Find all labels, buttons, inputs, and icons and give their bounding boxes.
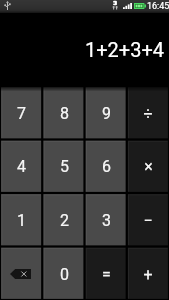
button[interactable]: 3: [85, 192, 127, 246]
button[interactable]: −: [127, 192, 169, 246]
button[interactable]: Delete: [0, 246, 43, 300]
staticText: 1: [17, 211, 26, 230]
button[interactable]: 7: [0, 86, 43, 139]
staticText: ×: [144, 157, 153, 176]
staticText: 8: [60, 104, 69, 123]
button[interactable]: =: [85, 246, 127, 300]
button[interactable]: 5: [43, 139, 85, 192]
staticText: 7: [17, 104, 26, 123]
button[interactable]: ×: [127, 139, 169, 192]
button[interactable]: 1: [0, 192, 43, 246]
staticText: 3: [102, 211, 111, 230]
button[interactable]: 6: [85, 139, 127, 192]
button[interactable]: 4: [0, 139, 43, 192]
button[interactable]: 9: [85, 86, 127, 139]
staticText: +: [143, 265, 153, 284]
button[interactable]: ÷: [127, 86, 169, 139]
button[interactable]: 8: [43, 86, 85, 139]
staticText: 9: [102, 104, 111, 123]
staticText: 4: [17, 157, 26, 176]
button[interactable]: 0: [43, 246, 85, 300]
staticText: 16:45: [147, 1, 169, 12]
staticText: 2: [60, 211, 69, 230]
staticText: −: [143, 211, 153, 230]
staticText: 0: [60, 265, 69, 284]
staticText: ÷: [143, 104, 153, 123]
staticText: 1+2+3+4: [85, 38, 165, 61]
button[interactable]: +: [127, 246, 169, 300]
staticText: =: [102, 265, 111, 284]
staticText: 6: [102, 157, 111, 176]
staticText: 5: [60, 157, 69, 176]
button[interactable]: 2: [43, 192, 85, 246]
